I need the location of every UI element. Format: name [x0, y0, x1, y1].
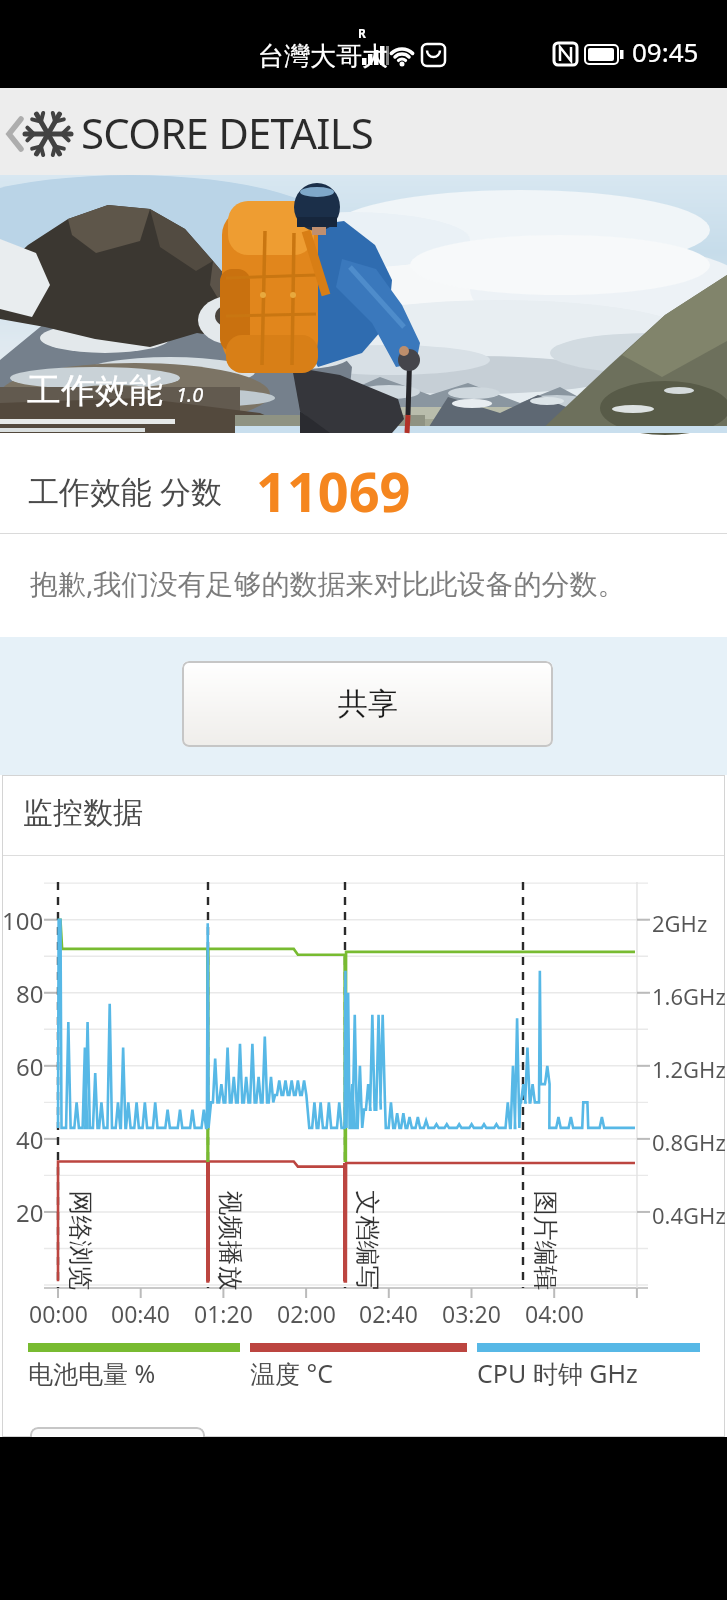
staticText: 04:00	[525, 1298, 584, 1329]
staticText: 1.2GHz	[652, 1054, 726, 1084]
staticText: 台灣大哥大	[258, 40, 388, 73]
staticText: 文档编写	[351, 1190, 382, 1290]
staticText: 60	[16, 1050, 44, 1082]
staticText: 80	[16, 977, 44, 1009]
staticText: 02:00	[277, 1298, 336, 1329]
staticText: 0.4GHz	[652, 1200, 726, 1230]
staticText: 00:00	[29, 1298, 88, 1329]
staticText: 20	[16, 1196, 44, 1228]
staticText: 02:40	[359, 1298, 418, 1329]
button[interactable]	[0, 88, 80, 175]
staticText: 2GHz	[652, 908, 708, 938]
staticText: 网络浏览	[64, 1190, 95, 1290]
button[interactable]	[30, 1427, 205, 1457]
staticText: CPU 时钟 GHz	[477, 1356, 638, 1390]
staticText: 监控数据	[23, 794, 143, 832]
staticText: 40	[16, 1123, 44, 1155]
staticText: 电池电量 %	[28, 1356, 156, 1390]
staticText: 03:20	[442, 1298, 501, 1329]
staticText: 00:40	[111, 1298, 170, 1329]
staticText: 1.6GHz	[652, 981, 726, 1011]
staticText: 工作效能	[27, 369, 163, 412]
staticText: R	[358, 25, 366, 41]
staticText: 温度 °C	[250, 1356, 334, 1390]
staticText: SCORE DETAILS	[81, 104, 374, 161]
staticText: 共享	[338, 685, 398, 723]
staticText: 09:45	[632, 34, 699, 69]
button[interactable]: 共享	[182, 661, 553, 747]
staticText: 11069	[256, 454, 411, 528]
staticText: 100	[2, 904, 44, 936]
staticText: 图片编辑	[529, 1190, 560, 1290]
staticText: 01:20	[194, 1298, 253, 1329]
staticText: 1.0	[176, 381, 204, 408]
staticText: 视频播放	[214, 1190, 245, 1290]
staticText: 抱歉,我们没有足够的数据来对比此设备的分数。	[30, 564, 626, 602]
staticText: 0.8GHz	[652, 1127, 726, 1157]
staticText: 工作效能 分数	[28, 470, 223, 512]
